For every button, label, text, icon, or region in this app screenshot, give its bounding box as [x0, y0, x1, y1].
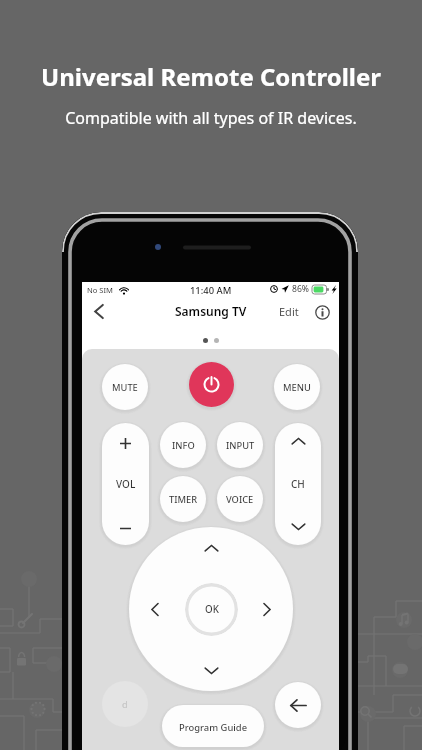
staticText: Samsung TV [175, 303, 247, 319]
button[interactable]: MUTE [102, 364, 148, 410]
button[interactable]: Back [275, 682, 321, 728]
staticText: No SIM [87, 285, 113, 295]
staticText: INFO [172, 439, 195, 452]
staticText: TIMER [169, 493, 198, 506]
button[interactable]: Power [189, 362, 234, 407]
button[interactable]: Info [311, 301, 333, 323]
button[interactable]: TIMER [160, 476, 206, 522]
button[interactable]: MENU [274, 364, 320, 410]
button[interactable]: Back [84, 296, 114, 326]
staticText: OK [205, 603, 219, 616]
button[interactable]: d [102, 681, 148, 727]
button[interactable]: VOICE [217, 476, 263, 522]
button[interactable]: Up [200, 537, 222, 559]
button[interactable]: Right [258, 600, 276, 618]
staticText: INPUT [226, 439, 255, 452]
button[interactable]: Edit [276, 297, 302, 326]
staticText: 11:40 AM [190, 284, 232, 297]
button[interactable]: INFO [160, 422, 206, 468]
button[interactable]: CH [275, 423, 321, 545]
staticText: CH [291, 477, 305, 491]
staticText: MENU [283, 381, 311, 394]
button[interactable]: INPUT [217, 422, 263, 468]
staticText: d [122, 698, 128, 711]
staticText: VOL [116, 477, 136, 491]
staticText: 86% [292, 283, 309, 295]
staticText: Edit [279, 304, 299, 319]
staticText: VOICE [226, 493, 254, 506]
button[interactable]: Down [200, 659, 222, 681]
button[interactable]: Program Guide [162, 705, 264, 747]
staticText: Universal Remote Controller [41, 60, 381, 93]
staticText: MUTE [112, 381, 138, 394]
staticText: Compatible with all types of IR devices. [65, 107, 357, 129]
staticText: Program Guide [179, 721, 248, 734]
button[interactable]: Left [146, 600, 164, 618]
button[interactable]: VOL [102, 423, 149, 545]
button[interactable]: OK [185, 583, 238, 636]
